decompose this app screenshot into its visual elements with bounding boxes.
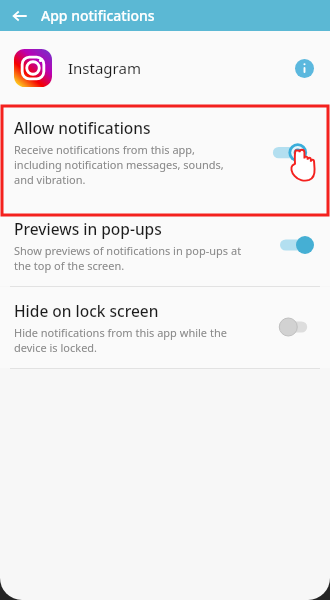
- button[interactable]: Previews in pop-ups: [0, 205, 330, 286]
- button[interactable]: Back: [6, 2, 34, 30]
- staticText: App notifications: [41, 6, 155, 25]
- button[interactable]: Allow notifications: [0, 105, 330, 216]
- staticText: Show previews of notifications in pop-up…: [14, 243, 242, 273]
- staticText: Hide notifications from this app while t…: [14, 325, 227, 355]
- staticText: Show notifications at the top of the not…: [14, 145, 243, 190]
- staticText: Instagram: [68, 58, 141, 78]
- button[interactable]: Instagram: [0, 31, 330, 105]
- staticText: Previews in pop-ups: [14, 218, 162, 239]
- staticText: Receive notifications from this app, inc…: [14, 142, 224, 187]
- staticText: Allow notifications: [14, 117, 151, 138]
- button[interactable]: App info: [292, 56, 316, 80]
- button[interactable]: Hide on lock screen: [0, 287, 330, 368]
- button[interactable]: Set as priority: [0, 106, 330, 204]
- button[interactable]: Previews in pop-ups: [280, 236, 314, 254]
- button[interactable]: Set as priority: [280, 138, 314, 156]
- staticText: Set as priority: [14, 120, 117, 141]
- button[interactable]: Hide on lock screen: [280, 318, 314, 336]
- staticText: Hide on lock screen: [14, 300, 159, 321]
